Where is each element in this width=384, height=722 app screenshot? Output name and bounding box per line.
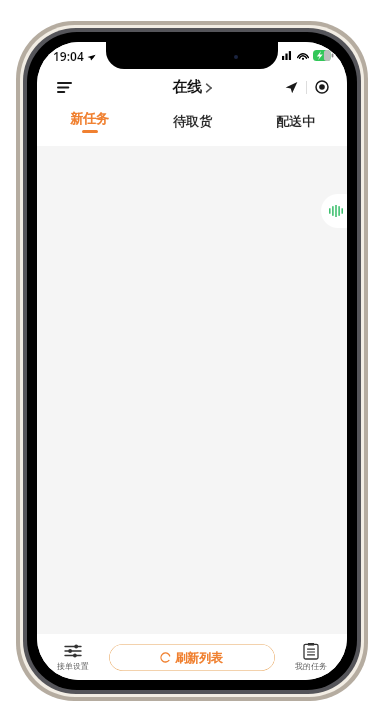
staticText: 新任务 [70,110,109,126]
button[interactable]: 新任务 [37,105,141,137]
staticText: 接单设置 [57,661,89,671]
button[interactable]: 接单设置 [37,634,109,680]
button[interactable]: Menu [49,72,79,102]
staticText: 在线 [172,78,202,97]
button[interactable]: Locate [307,74,337,100]
staticText: 我的任务 [295,661,327,671]
staticText: 刷新列表 [175,650,223,665]
staticText: 19:04 [53,48,84,64]
staticText: 待取货 [173,113,212,129]
staticText: 配送中 [276,113,315,129]
button[interactable]: 待取货 [141,105,244,137]
button[interactable]: 刷新列表 [109,644,275,671]
button[interactable]: 在线 [172,78,212,97]
button[interactable]: 我的任务 [275,634,347,680]
button[interactable]: Voice [321,194,347,228]
button[interactable]: 配送中 [244,105,347,137]
button[interactable]: Navigate [276,74,306,100]
